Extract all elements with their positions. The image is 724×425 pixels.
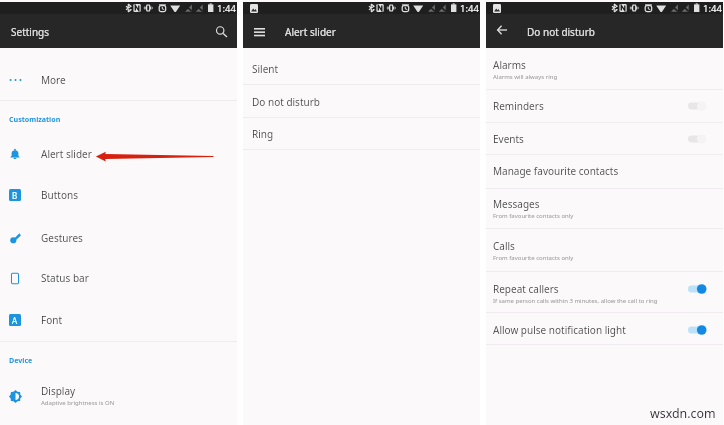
button[interactable]: More xyxy=(0,61,237,97)
button[interactable]: Silent xyxy=(243,48,480,84)
staticText: Customization xyxy=(9,114,61,124)
staticText: Reminders xyxy=(493,99,544,113)
button[interactable]: Allow pulse notification light xyxy=(688,324,710,336)
staticText: Do not disturb xyxy=(527,25,595,39)
staticText: Settings xyxy=(11,25,50,39)
staticText: Messages xyxy=(493,197,540,211)
staticText: Adaptive brightness is ON xyxy=(41,399,115,407)
button[interactable]: Manage favourite contacts xyxy=(486,164,723,178)
staticText: B xyxy=(12,190,18,201)
staticText: Alarms xyxy=(493,58,526,72)
staticText: From favourite contacts only xyxy=(493,254,574,262)
button[interactable]: A xyxy=(0,301,237,337)
button[interactable]: Events xyxy=(486,132,723,146)
staticText: Do not disturb xyxy=(252,95,320,109)
staticText: Alarms will always ring xyxy=(493,73,558,81)
button[interactable]: Search xyxy=(210,20,232,42)
staticText: Allow pulse notification light xyxy=(493,323,626,337)
staticText: Buttons xyxy=(41,188,78,202)
staticText: 1:44 xyxy=(460,2,479,14)
button[interactable]: Do not disturb xyxy=(243,84,480,117)
staticText: wsxdn.com xyxy=(650,405,716,422)
button[interactable]: Events xyxy=(688,133,710,145)
button[interactable]: Menu xyxy=(250,23,268,41)
staticText: Device xyxy=(9,355,33,365)
staticText: Manage favourite contacts xyxy=(493,164,619,178)
staticText: Status bar xyxy=(41,271,89,285)
button[interactable]: Reminders xyxy=(688,100,710,112)
button[interactable]: Reminders xyxy=(486,99,723,113)
staticText: Alert slider xyxy=(285,25,336,39)
button[interactable]: Back xyxy=(493,21,511,39)
button[interactable]: Display xyxy=(0,372,237,408)
staticText: Repeat callers xyxy=(493,282,559,296)
button[interactable]: B xyxy=(0,176,237,212)
button[interactable]: Repeat callers xyxy=(688,283,710,295)
staticText: Gestures xyxy=(41,231,83,245)
button[interactable]: Alert slider xyxy=(0,135,237,171)
button[interactable]: Messages xyxy=(486,197,723,221)
button[interactable]: Status bar xyxy=(0,259,237,295)
button[interactable]: Gestures xyxy=(0,219,237,255)
staticText: Calls xyxy=(493,239,515,253)
button[interactable]: Repeat callers xyxy=(486,282,723,306)
staticText: Ring xyxy=(252,127,274,141)
staticText: 1:44 xyxy=(217,2,236,14)
button[interactable]: Alarms xyxy=(486,58,723,82)
staticText: Silent xyxy=(252,62,279,76)
staticText: 1:44 xyxy=(703,2,722,14)
staticText: Display xyxy=(41,384,76,398)
staticText: Font xyxy=(41,313,63,327)
button[interactable]: Ring xyxy=(243,117,480,149)
staticText: If same person calls within 3 minutes, a… xyxy=(493,297,658,305)
button[interactable]: Allow pulse notification light xyxy=(486,323,723,337)
staticText: More xyxy=(41,73,66,87)
staticText: Alert slider xyxy=(41,147,92,161)
button[interactable]: Calls xyxy=(486,239,723,263)
staticText: From favourite contacts only xyxy=(493,212,574,220)
staticText: Events xyxy=(493,132,524,146)
staticText: A xyxy=(12,315,18,326)
